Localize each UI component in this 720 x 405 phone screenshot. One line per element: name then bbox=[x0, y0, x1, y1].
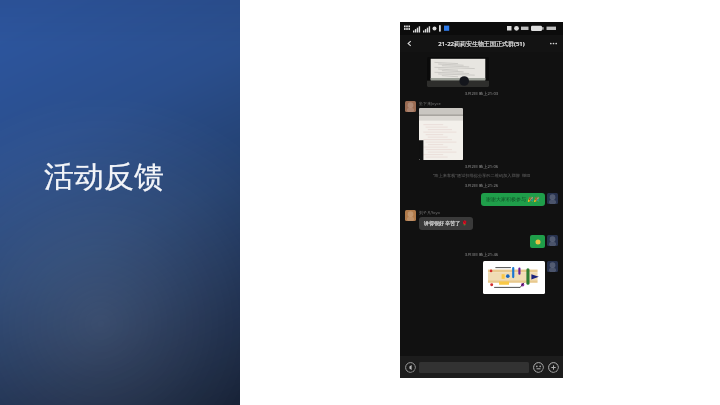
button[interactable]: More bbox=[547, 361, 559, 373]
button[interactable]: Avatar bbox=[405, 101, 416, 112]
button[interactable]: Emoji bbox=[532, 361, 544, 373]
staticText: 活动反馈 bbox=[44, 158, 164, 196]
button[interactable]: Avatar bbox=[547, 193, 558, 204]
staticText: 讲得很好 辛苦了 🌹 bbox=[424, 220, 468, 227]
staticText: 谢谢大家积极参与 🎉🎉 bbox=[486, 196, 540, 203]
button[interactable]: 讲得很好 辛苦了 🌹 bbox=[419, 217, 473, 230]
button[interactable] bbox=[483, 261, 545, 294]
staticText: 21-22莉莉安生物王国正式群(51) bbox=[438, 40, 525, 48]
button[interactable]: Avatar bbox=[547, 235, 558, 246]
staticText: 3月2日 晚上21:26 bbox=[405, 183, 558, 189]
staticText: "路上来客栈"通过扫描你分享的二维码加入群聊 撤回 bbox=[405, 173, 558, 179]
staticText: 3月3日 晚上21:46 bbox=[405, 252, 558, 258]
staticText: 3月2日 晚上21:06 bbox=[405, 164, 558, 170]
button[interactable]: More options bbox=[547, 37, 560, 50]
button[interactable] bbox=[530, 235, 545, 248]
button[interactable] bbox=[419, 108, 463, 160]
button[interactable]: Back bbox=[403, 37, 416, 50]
button[interactable]: 谢谢大家积极参与 🎉🎉 bbox=[481, 193, 545, 206]
button[interactable]: Avatar bbox=[547, 261, 558, 272]
staticText: 坐下来Joyce bbox=[419, 101, 441, 106]
staticText: 3月2日 晚上21:03 bbox=[405, 91, 558, 97]
button[interactable]: Voice input bbox=[404, 361, 416, 373]
button[interactable]: Avatar bbox=[405, 210, 416, 221]
button[interactable] bbox=[427, 57, 489, 87]
staticText: 刘子凡Yoyo bbox=[419, 210, 440, 215]
